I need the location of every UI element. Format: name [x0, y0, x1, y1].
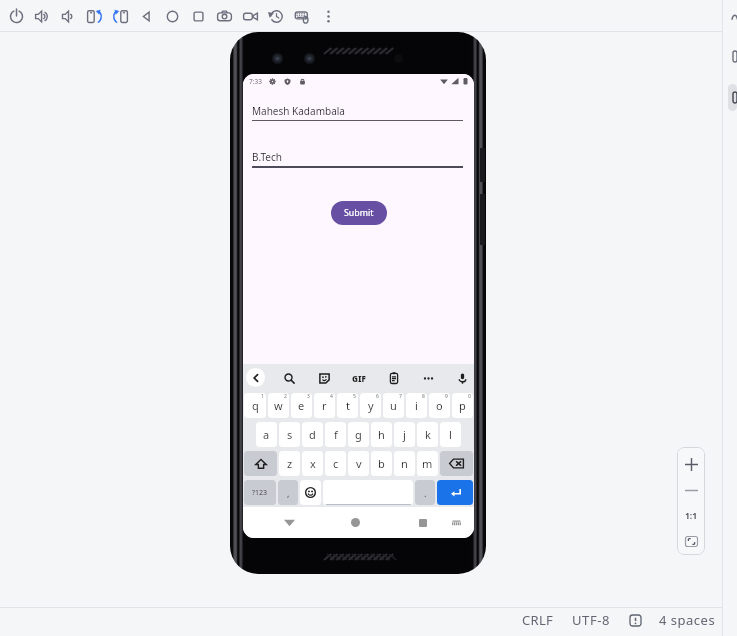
- staticText: y: [368, 398, 374, 413]
- button[interactable]: z: [279, 451, 300, 476]
- staticText: 0: [468, 393, 471, 400]
- staticText: j: [403, 427, 406, 442]
- button[interactable]: Hide keyboard: [446, 512, 467, 533]
- button[interactable]: y: [360, 393, 381, 418]
- button[interactable]: .: [415, 480, 435, 505]
- button[interactable]: Clipboard: [383, 367, 405, 389]
- staticText: a: [263, 427, 270, 442]
- button[interactable]: Record screen: [237, 1, 263, 31]
- button[interactable]: Expand toolbar: [246, 368, 265, 387]
- staticText: d: [309, 427, 316, 442]
- button[interactable]: u: [383, 393, 404, 418]
- button[interactable]: o: [429, 393, 450, 418]
- staticText: f: [334, 427, 338, 442]
- button[interactable]: Zoom in: [681, 454, 701, 474]
- button[interactable]: c: [325, 451, 346, 476]
- staticText: z: [287, 456, 293, 471]
- button[interactable]: Space: [323, 480, 413, 505]
- button[interactable]: w: [268, 393, 289, 418]
- button[interactable]: Home: [159, 1, 185, 31]
- button[interactable]: Search: [278, 367, 300, 389]
- button[interactable]: l: [440, 422, 461, 447]
- button[interactable]: m: [417, 451, 438, 476]
- button[interactable]: i: [406, 393, 427, 418]
- button[interactable]: GIF: [347, 367, 371, 389]
- staticText: 5: [353, 393, 356, 400]
- staticText: .: [424, 487, 427, 499]
- staticText: o: [436, 398, 443, 413]
- staticText: r: [322, 398, 327, 413]
- staticText: i: [415, 398, 418, 413]
- staticText: 1:1: [685, 510, 698, 522]
- button[interactable]: UTF-8: [572, 611, 611, 629]
- button[interactable]: More: [315, 1, 341, 31]
- button[interactable]: Recent apps: [412, 512, 433, 533]
- button[interactable]: 4 spaces: [659, 611, 716, 629]
- staticText: 7:33: [249, 77, 262, 86]
- button[interactable]: a: [256, 422, 277, 447]
- button[interactable]: f: [325, 422, 346, 447]
- button[interactable]: Backspace: [440, 451, 473, 476]
- button[interactable]: Reset: [263, 1, 289, 31]
- staticText: t: [346, 398, 350, 413]
- button[interactable]: 1:1: [681, 506, 701, 526]
- button[interactable]: Keyboard shortcuts: [289, 1, 315, 31]
- staticText: n: [401, 456, 408, 471]
- button[interactable]: Volume down: [55, 1, 81, 31]
- button[interactable]: Shift: [244, 451, 277, 476]
- button[interactable]: More options: [417, 367, 439, 389]
- button[interactable]: b: [371, 451, 392, 476]
- button[interactable]: Overview: [185, 1, 211, 31]
- button[interactable]: e: [291, 393, 312, 418]
- button[interactable]: x: [302, 451, 323, 476]
- staticText: w: [274, 398, 283, 413]
- button[interactable]: s: [279, 422, 300, 447]
- button[interactable]: r: [314, 393, 335, 418]
- button[interactable]: Problems: [626, 611, 645, 630]
- button[interactable]: ,: [278, 480, 298, 505]
- button[interactable]: Stickers: [313, 367, 335, 389]
- button[interactable]: h: [371, 422, 392, 447]
- button[interactable]: q: [244, 393, 266, 418]
- button[interactable]: n: [394, 451, 415, 476]
- button[interactable]: p: [452, 393, 473, 418]
- button[interactable]: CRLF: [522, 611, 554, 629]
- staticText: x: [310, 456, 316, 471]
- staticText: GIF: [352, 373, 366, 384]
- button[interactable]: Zoom to fit: [681, 531, 701, 551]
- staticText: 4: [330, 393, 333, 400]
- staticText: 2: [284, 393, 287, 400]
- button[interactable]: Back: [133, 1, 159, 31]
- button[interactable]: Home: [345, 512, 366, 533]
- button[interactable]: t: [337, 393, 358, 418]
- staticText: s: [287, 427, 293, 442]
- button[interactable]: k: [417, 422, 438, 447]
- button[interactable]: Emoji: [300, 480, 321, 505]
- staticText: 1: [261, 393, 264, 400]
- staticText: 7: [399, 393, 402, 400]
- button[interactable]: Power: [3, 1, 29, 31]
- button[interactable]: Rotate left: [81, 1, 107, 31]
- button[interactable]: ?123: [244, 480, 276, 505]
- button[interactable]: Voice input: [451, 367, 473, 389]
- staticText: v: [356, 456, 362, 471]
- staticText: p: [459, 398, 466, 413]
- button[interactable]: d: [302, 422, 323, 447]
- staticText: Mahesh Kadambala: [252, 104, 345, 118]
- button[interactable]: Take screenshot: [211, 1, 237, 31]
- button[interactable]: j: [394, 422, 415, 447]
- button[interactable]: Submit: [331, 201, 387, 225]
- button[interactable]: v: [348, 451, 369, 476]
- button[interactable]: Rotate right: [107, 1, 133, 31]
- button[interactable]: g: [348, 422, 369, 447]
- staticText: Submit: [344, 207, 374, 219]
- button[interactable]: Volume up: [29, 1, 55, 31]
- button[interactable]: Back: [279, 512, 300, 533]
- staticText: ,: [287, 487, 290, 499]
- button[interactable]: Enter: [437, 480, 473, 505]
- button[interactable]: Device Manager: [728, 84, 737, 111]
- staticText: 8: [422, 393, 425, 400]
- button[interactable]: Zoom out: [681, 480, 701, 500]
- staticText: m: [422, 456, 433, 471]
